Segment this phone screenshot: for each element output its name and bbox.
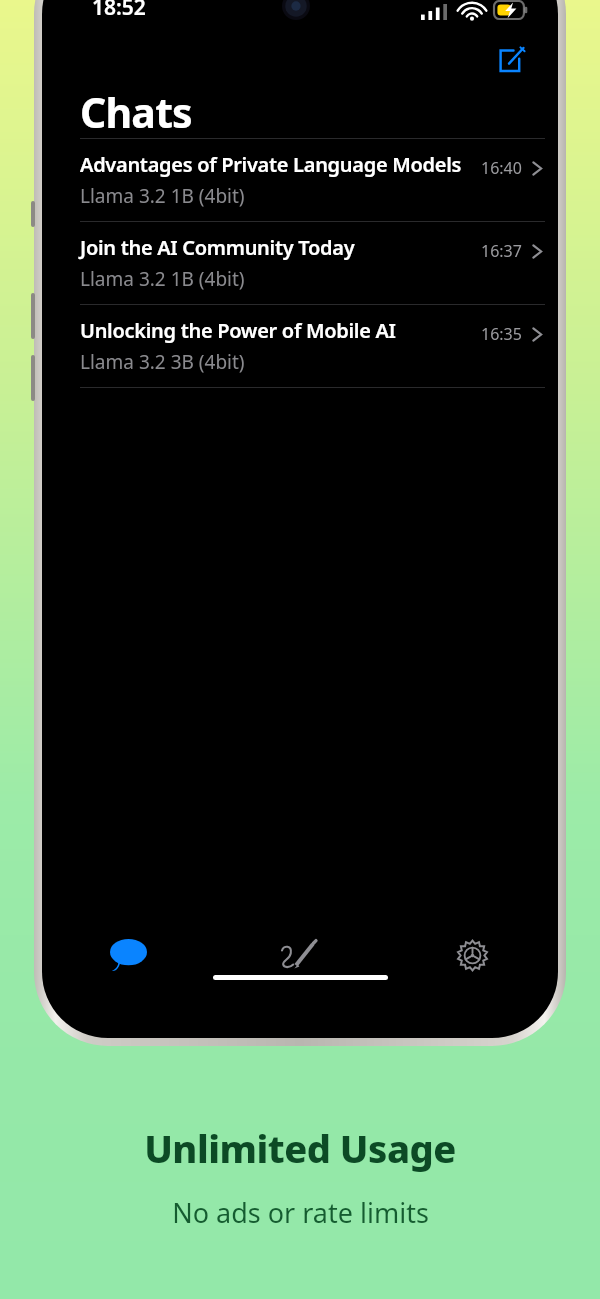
- staticText: Chats: [80, 84, 192, 140]
- staticText: 16:37: [481, 240, 522, 262]
- staticText: 16:40: [481, 157, 522, 179]
- staticText: Llama 3.2 3B (4bit): [80, 349, 245, 375]
- button[interactable]: Unlocking the Power of Mobile AI: [42, 305, 558, 387]
- button[interactable]: Advantages of Private Language Models: [42, 139, 558, 221]
- staticText: 18:52: [92, 0, 146, 22]
- staticText: Llama 3.2 1B (4bit): [80, 266, 245, 292]
- button[interactable]: Models: [214, 924, 386, 986]
- button[interactable]: Chats: [42, 924, 214, 986]
- staticText: 16:35: [481, 323, 522, 345]
- button[interactable]: Join the AI Community Today: [42, 222, 558, 304]
- button[interactable]: Settings: [386, 924, 558, 986]
- staticText: Advantages of Private Language Models: [80, 151, 462, 178]
- staticText: Llama 3.2 1B (4bit): [80, 183, 245, 209]
- button[interactable]: New chat: [488, 36, 536, 84]
- staticText: Unlimited Usage: [144, 1122, 456, 1174]
- staticText: No ads or rate limits: [172, 1194, 429, 1231]
- staticText: Unlocking the Power of Mobile AI: [80, 317, 396, 344]
- staticText: Join the AI Community Today: [80, 234, 355, 261]
